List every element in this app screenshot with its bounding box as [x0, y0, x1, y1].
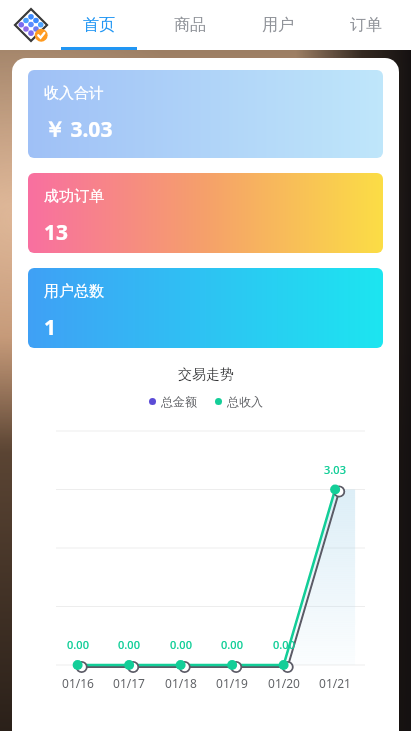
staticText: 首页 [83, 15, 115, 35]
button[interactable]: 首页 [52, 0, 146, 50]
button[interactable]: 用户总数 [28, 268, 383, 348]
staticText: 0.00 [67, 637, 89, 652]
staticText: 01/20 [268, 675, 300, 691]
staticText: 0.00 [273, 637, 295, 652]
staticText: 0.00 [221, 637, 243, 652]
staticText: 01/17 [113, 675, 145, 691]
staticText: 0.00 [170, 637, 192, 652]
staticText: 成功订单 [44, 187, 104, 206]
button[interactable]: App logo [10, 4, 52, 46]
staticText: 订单 [350, 15, 382, 35]
staticText: 01/16 [62, 675, 94, 691]
staticText: 1 [44, 313, 57, 342]
staticText: 商品 [174, 15, 206, 35]
button[interactable]: 成功订单 [28, 173, 383, 253]
staticText: 13 [44, 218, 69, 247]
staticText: 用户 [262, 15, 294, 35]
staticText: 总收入 [227, 394, 263, 409]
button[interactable]: 总金额 [149, 394, 197, 409]
staticText: 01/21 [319, 675, 351, 691]
staticText: 总金额 [161, 394, 197, 409]
staticText: ￥ 3.03 [44, 115, 113, 144]
button[interactable]: 用户 [234, 0, 322, 50]
staticText: 收入合计 [44, 84, 104, 103]
staticText: 01/19 [216, 675, 248, 691]
button[interactable]: 商品 [146, 0, 234, 50]
button[interactable]: 订单 [322, 0, 410, 50]
staticText: 用户总数 [44, 282, 104, 301]
staticText: 3.03 [324, 462, 346, 477]
staticText: 0.00 [118, 637, 140, 652]
button[interactable]: 收入合计 [28, 70, 383, 158]
staticText: 01/18 [165, 675, 197, 691]
staticText: 交易走势 [178, 366, 234, 384]
button[interactable]: 总收入 [215, 394, 263, 409]
